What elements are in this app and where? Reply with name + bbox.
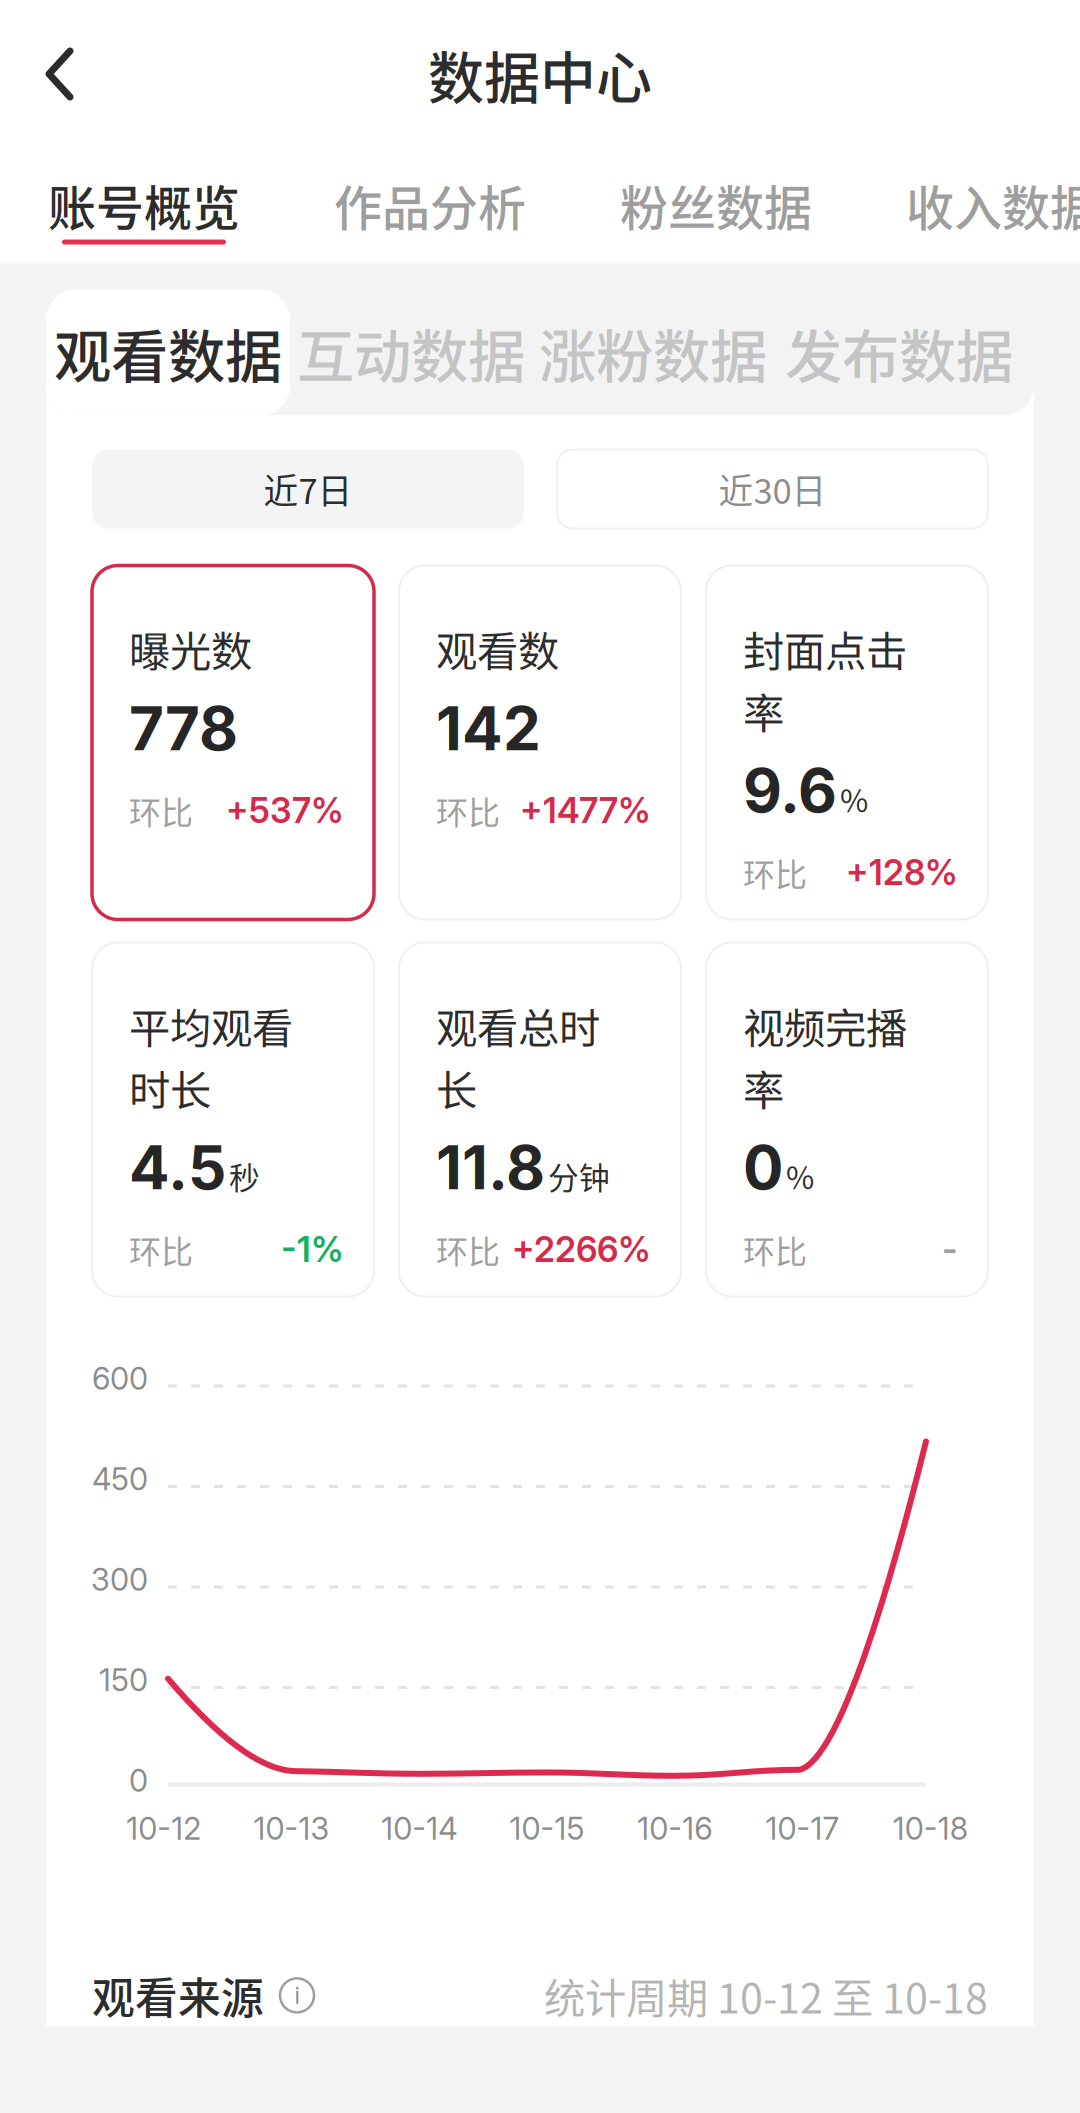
staticText: 互动数据 [297, 311, 525, 394]
staticText: +537% [226, 789, 344, 831]
staticText: 封面点击 [743, 619, 907, 678]
button[interactable]: 近7日 [92, 449, 524, 528]
staticText: 观看总时 [436, 996, 600, 1055]
staticText: 10-16 [637, 1810, 712, 1847]
staticText: 作品分析 [334, 170, 526, 239]
staticText: 观看来源 [92, 1964, 264, 2026]
staticText: 10-13 [254, 1810, 330, 1847]
staticText: 142 [436, 692, 541, 765]
button[interactable]: 收入数据 [904, 170, 1080, 244]
staticText: 环比 [129, 1226, 193, 1273]
staticText: 300 [91, 1561, 148, 1598]
staticText: 涨粉数据 [539, 311, 767, 394]
staticText: +1477% [520, 789, 651, 831]
staticText: 9.6 [743, 754, 837, 827]
staticText: 450 [92, 1460, 148, 1498]
staticText: 环比 [743, 849, 807, 896]
staticText: 778 [129, 692, 238, 765]
staticText: 时长 [129, 1058, 211, 1117]
button[interactable]: Info [278, 1976, 316, 2014]
button[interactable]: 粉丝数据 [618, 170, 814, 244]
staticText: 环比 [436, 1226, 500, 1273]
button[interactable]: 视频完播 [706, 942, 988, 1296]
staticText: 视频完播 [743, 996, 907, 1055]
staticText: 数据中心 [428, 33, 652, 115]
button[interactable]: 平均观看 [92, 942, 374, 1296]
staticText: 长 [436, 1058, 477, 1117]
staticText: 统计周期 10-12 至 10-18 [544, 1965, 988, 2025]
staticText: 0 [129, 1762, 148, 1799]
button[interactable]: 作品分析 [332, 170, 528, 244]
button[interactable]: 观看总时 [399, 942, 681, 1296]
staticText: -1% [281, 1228, 344, 1270]
staticText: 观看数据 [54, 311, 282, 394]
staticText: % [786, 1154, 814, 1198]
staticText: 600 [92, 1360, 148, 1397]
button[interactable]: Back [0, 14, 120, 134]
button[interactable]: 观看数 [399, 565, 681, 919]
button[interactable]: 涨粉数据 [532, 289, 774, 415]
button[interactable]: 互动数据 [290, 289, 532, 415]
staticText: +128% [846, 851, 958, 893]
staticText: 10-14 [381, 1810, 457, 1847]
staticText: 4.5 [129, 1131, 226, 1204]
button[interactable]: 封面点击 [706, 565, 988, 919]
staticText: 粉丝数据 [620, 170, 812, 239]
staticText: 环比 [743, 1226, 807, 1273]
staticText: 观看数 [436, 619, 559, 678]
button[interactable]: 账号概览 [46, 170, 242, 244]
staticText: 环比 [436, 787, 500, 834]
staticText: 分钟 [548, 1154, 610, 1198]
staticText: 11.8 [436, 1131, 545, 1204]
staticText: i [294, 1982, 299, 2009]
staticText: 近7日 [263, 464, 352, 514]
staticText: 曝光数 [129, 619, 252, 678]
button[interactable]: 观看数据 [46, 289, 290, 415]
staticText: 近30日 [718, 464, 826, 514]
staticText: 率 [743, 1058, 784, 1117]
staticText: 收入数据 [906, 170, 1080, 239]
staticText: 账号概览 [48, 170, 240, 239]
staticText: 0 [743, 1131, 783, 1204]
button[interactable]: 发布数据 [774, 289, 1024, 415]
staticText: +2266% [512, 1228, 651, 1270]
button[interactable]: 近30日 [557, 449, 988, 528]
button[interactable]: 曝光数 [92, 565, 374, 919]
staticText: % [840, 777, 868, 821]
staticText: 秒 [229, 1154, 260, 1198]
staticText: 10-17 [765, 1810, 839, 1847]
staticText: 率 [743, 681, 784, 740]
staticText: 10-18 [893, 1810, 968, 1847]
staticText: 环比 [129, 787, 193, 834]
staticText: 10-15 [509, 1810, 584, 1847]
staticText: 发布数据 [785, 311, 1013, 394]
staticText: 10-12 [126, 1810, 201, 1847]
staticText: - [942, 1228, 958, 1270]
staticText: 平均观看 [129, 996, 293, 1055]
staticText: 150 [99, 1661, 148, 1699]
